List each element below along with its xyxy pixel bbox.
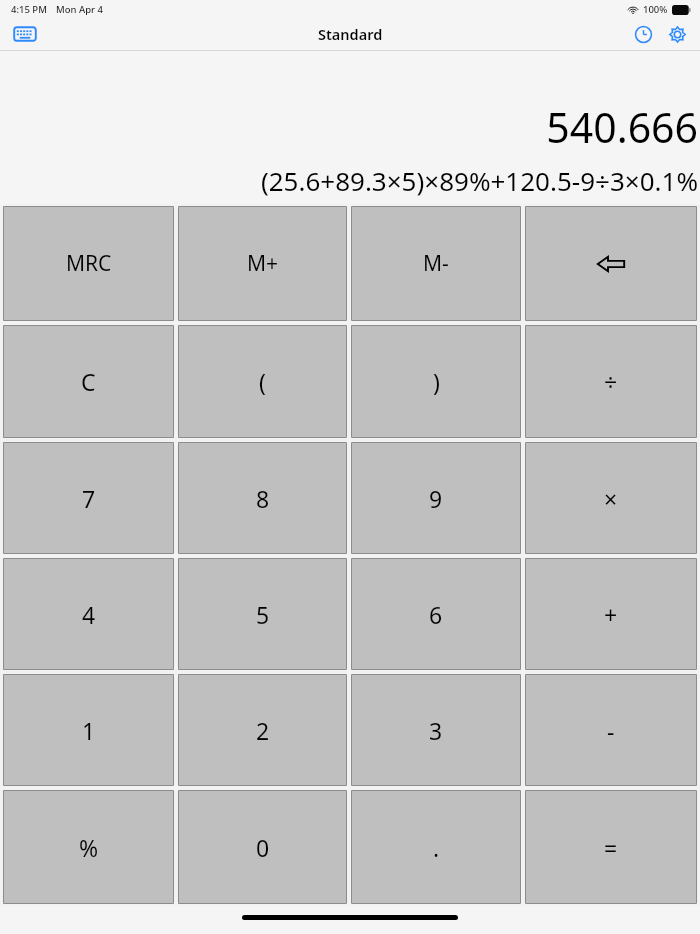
button[interactable]: Settings	[662, 19, 692, 49]
staticText: =	[604, 832, 618, 863]
staticText: %	[79, 832, 99, 863]
button[interactable]: +	[526, 559, 696, 669]
button[interactable]: 3	[352, 675, 520, 785]
button[interactable]: 2	[179, 675, 346, 785]
button[interactable]: )	[352, 326, 520, 437]
button[interactable]: M+	[179, 207, 346, 320]
button[interactable]: M-	[352, 207, 520, 320]
button[interactable]: C	[4, 326, 173, 437]
staticText: )	[433, 366, 440, 397]
staticText: .	[433, 832, 440, 863]
button[interactable]: 8	[179, 443, 346, 553]
staticText: (25.6+89.3×5)×89%+120.5-9÷3×0.1%	[260, 163, 698, 198]
button[interactable]: .	[352, 791, 520, 903]
staticText: M-	[423, 249, 449, 278]
button[interactable]: 7	[4, 443, 173, 553]
staticText: 8	[256, 483, 270, 514]
other: Backspace	[595, 253, 627, 275]
button[interactable]: History	[628, 19, 658, 49]
staticText: 4:15 PM	[11, 3, 47, 16]
staticText: Standard	[318, 24, 383, 44]
button[interactable]: ×	[526, 443, 696, 553]
button[interactable]: =	[526, 791, 696, 903]
staticText: 7	[82, 483, 96, 514]
staticText: 2	[256, 715, 270, 746]
staticText: M+	[247, 249, 279, 278]
staticText: ×	[604, 483, 618, 514]
staticText: (	[259, 366, 266, 397]
staticText: 4	[82, 599, 96, 630]
staticText: 9	[429, 483, 443, 514]
button[interactable]: ÷	[526, 326, 696, 437]
button[interactable]: 6	[352, 559, 520, 669]
staticText: +	[604, 599, 618, 630]
staticText: 0	[256, 832, 270, 863]
button[interactable]: %	[4, 791, 173, 903]
button[interactable]: (	[179, 326, 346, 437]
button[interactable]: Keyboard	[8, 21, 42, 47]
staticText: 100%	[643, 3, 668, 16]
button[interactable]: MRC	[4, 207, 173, 320]
button[interactable]: 0	[179, 791, 346, 903]
staticText: 6	[429, 599, 443, 630]
staticText: 5	[256, 599, 270, 630]
staticText: ÷	[604, 366, 618, 397]
staticText: 540.666	[546, 99, 698, 155]
staticText: 1	[82, 715, 96, 746]
button[interactable]: 4	[4, 559, 173, 669]
staticText: Mon Apr 4	[56, 3, 103, 16]
staticText: MRC	[66, 249, 112, 278]
button[interactable]: -	[526, 675, 696, 785]
staticText: -	[607, 715, 615, 746]
staticText: C	[81, 366, 96, 397]
button[interactable]: 9	[352, 443, 520, 553]
staticText: 3	[429, 715, 443, 746]
button[interactable]: Backspace	[526, 207, 696, 320]
button[interactable]: 5	[179, 559, 346, 669]
button[interactable]: 1	[4, 675, 173, 785]
